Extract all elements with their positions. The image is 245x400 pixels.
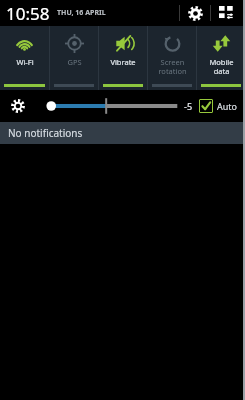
- staticText: Wi-Fi: [16, 57, 34, 67]
- staticText: Auto: [217, 100, 238, 112]
- button[interactable]: Settings: [180, 0, 210, 26]
- button[interactable]: Wi-Fi: [0, 26, 49, 90]
- button[interactable]: Screen rotation: [148, 26, 196, 90]
- button[interactable]: Mobile data: [197, 26, 245, 90]
- button[interactable]: Edit quick settings: [211, 0, 241, 26]
- staticText: 10:58: [6, 2, 50, 25]
- staticText: Vibrate: [110, 57, 136, 67]
- button[interactable]: Auto: [198, 97, 239, 115]
- staticText: THU, 16 APRIL: [57, 8, 106, 18]
- button[interactable]: GPS: [50, 26, 98, 90]
- button[interactable]: Vibrate: [99, 26, 147, 90]
- staticText: No notifications: [8, 126, 83, 140]
- staticText: Screen rotation: [158, 57, 187, 76]
- button[interactable]: Brightness slider: [36, 93, 178, 119]
- staticText: -5: [184, 100, 193, 112]
- staticText: Mobile data: [209, 57, 234, 76]
- button[interactable]: No notifications: [0, 122, 245, 144]
- staticText: GPS: [67, 57, 82, 67]
- button[interactable]: Brightness: [6, 94, 30, 118]
